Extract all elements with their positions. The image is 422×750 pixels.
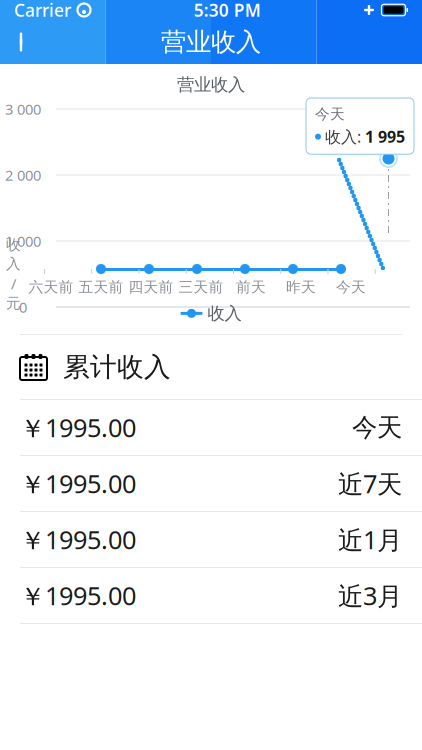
button[interactable]: ￥1995.00 bbox=[0, 400, 422, 456]
staticText: 今天 bbox=[336, 278, 366, 296]
staticText: 营业收入 bbox=[161, 26, 261, 57]
staticText: 六天前 bbox=[28, 278, 73, 296]
staticText: 近3月 bbox=[338, 579, 402, 612]
staticText: 四天前 bbox=[128, 278, 173, 296]
staticText: 今天 bbox=[352, 412, 402, 443]
button[interactable]: ￥1995.00 bbox=[0, 568, 422, 624]
staticText: ￥1995.00 bbox=[20, 467, 136, 500]
staticText: 前天 bbox=[236, 278, 266, 296]
staticText: 五天前 bbox=[78, 278, 123, 296]
button[interactable]: ￥1995.00 bbox=[0, 456, 422, 512]
staticText: 0 bbox=[19, 297, 27, 317]
staticText: 收入 bbox=[207, 303, 241, 324]
staticText: 累计收入 bbox=[63, 351, 171, 383]
staticText: ￥1995.00 bbox=[20, 523, 136, 556]
staticText: 收入: bbox=[325, 126, 361, 147]
staticText: 近1月 bbox=[338, 523, 402, 556]
staticText: 1 995 bbox=[365, 126, 405, 147]
staticText: Carrier bbox=[14, 0, 71, 21]
staticText: / bbox=[11, 274, 16, 293]
staticText: 2 000 bbox=[5, 165, 41, 185]
staticText: 元 bbox=[6, 294, 21, 312]
staticText: 营业收入 bbox=[177, 74, 245, 95]
staticText: 3 000 bbox=[5, 99, 41, 119]
staticText: ￥1995.00 bbox=[20, 411, 136, 444]
button[interactable]: 返回 bbox=[0, 20, 48, 64]
staticText: 入 bbox=[6, 255, 21, 273]
staticText: 5:30 PM bbox=[194, 0, 261, 21]
staticText: 1 000 bbox=[5, 231, 41, 251]
staticText: ￥1995.00 bbox=[20, 579, 136, 612]
staticText: 三天前 bbox=[178, 278, 223, 296]
staticText: 收 bbox=[6, 236, 21, 254]
staticText: 今天 bbox=[315, 105, 345, 123]
staticText: 近7天 bbox=[338, 467, 402, 500]
button[interactable]: ￥1995.00 bbox=[0, 512, 422, 568]
staticText: 昨天 bbox=[286, 278, 316, 296]
